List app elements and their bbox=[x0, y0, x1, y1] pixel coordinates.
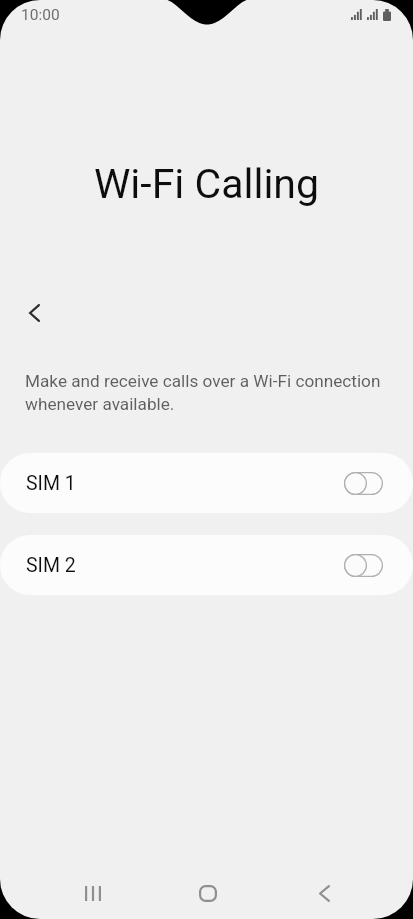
staticText: SIM 1 bbox=[26, 472, 76, 495]
staticText: Make and receive calls over a Wi-Fi conn… bbox=[25, 371, 389, 414]
button[interactable]: Back bbox=[300, 869, 348, 917]
staticText: SIM 2 bbox=[26, 554, 76, 577]
button[interactable]: Navigate up bbox=[12, 291, 56, 335]
button[interactable]: SIM 2 bbox=[0, 535, 413, 595]
staticText: 10:00 bbox=[21, 6, 60, 24]
button[interactable]: Recent apps bbox=[69, 869, 117, 917]
button[interactable]: SIM 1 bbox=[0, 453, 413, 513]
staticText: Wi-Fi Calling bbox=[0, 160, 413, 208]
button[interactable]: Home bbox=[184, 869, 232, 917]
